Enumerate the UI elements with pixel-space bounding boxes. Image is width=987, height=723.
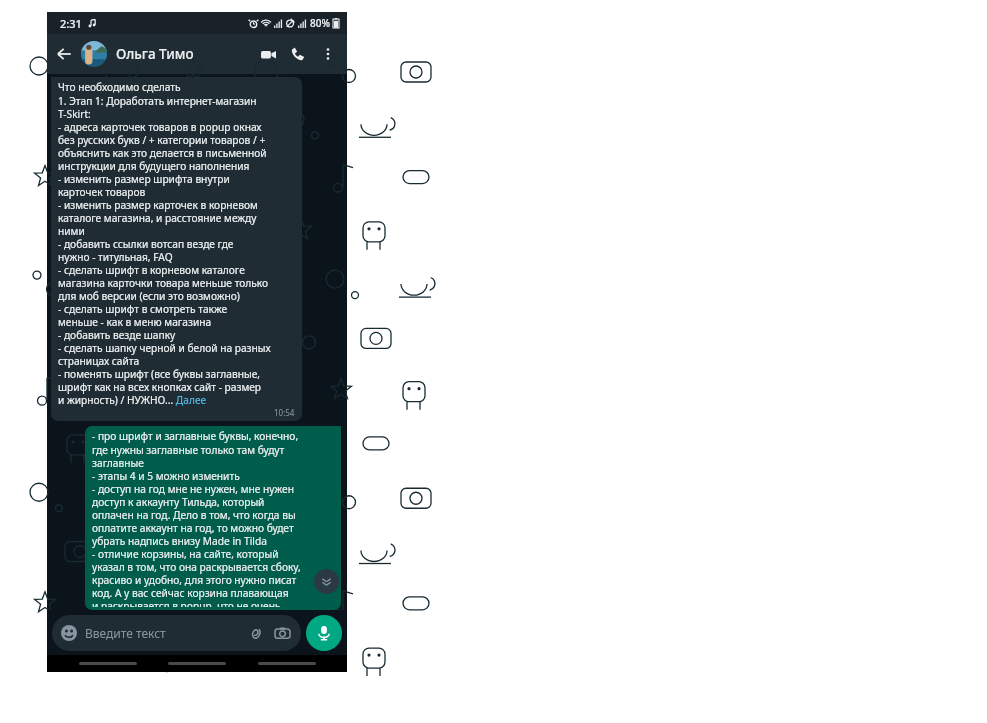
button[interactable]: Ольга Тимо bbox=[81, 34, 253, 74]
staticText: Что необходимо сделать 1. Этап 1: Дорабо… bbox=[58, 80, 271, 407]
button[interactable]: Camera bbox=[272, 623, 292, 643]
staticText: 80% bbox=[310, 16, 330, 30]
button[interactable]: Video call bbox=[253, 39, 283, 69]
button[interactable]: Back bbox=[47, 37, 81, 71]
button[interactable]: Введите текст bbox=[52, 615, 301, 651]
button[interactable]: Scroll to bottom bbox=[314, 569, 339, 594]
staticText: 2:31 bbox=[60, 16, 82, 31]
button[interactable]: More options bbox=[313, 39, 343, 69]
button[interactable]: Record voice message bbox=[306, 615, 342, 651]
staticText: - про шрифт и заглавные буквы, конечно, … bbox=[92, 429, 301, 607]
button[interactable]: Call bbox=[283, 39, 313, 69]
button[interactable]: Navigation bbox=[258, 662, 316, 665]
button[interactable]: - про шрифт и заглавные буквы, конечно, … bbox=[85, 426, 341, 610]
button[interactable]: Что необходимо сделать 1. Этап 1: Дорабо… bbox=[51, 77, 302, 421]
staticText: Введите текст bbox=[85, 625, 245, 641]
button[interactable]: Navigation bbox=[168, 662, 226, 665]
button[interactable]: Attach bbox=[245, 623, 265, 643]
button[interactable]: Navigation bbox=[79, 662, 137, 665]
staticText: 10:54 bbox=[274, 407, 295, 418]
staticText: Ольга Тимо bbox=[116, 45, 194, 63]
